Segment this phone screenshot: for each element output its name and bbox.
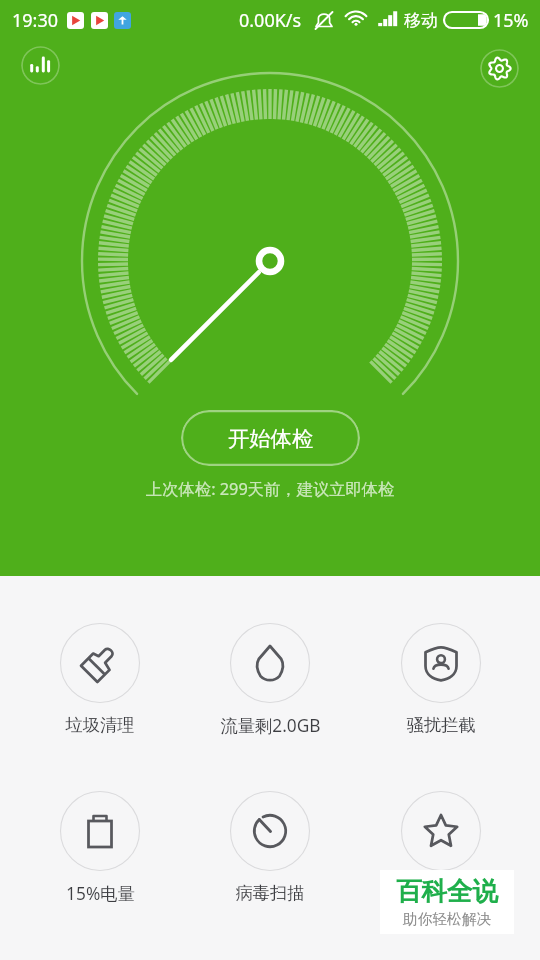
button[interactable]: Data remaining [195,623,345,738]
staticText: 19:30 [12,8,59,33]
staticText: 百科全说 [396,875,498,907]
button[interactable]: Battery [25,791,175,906]
button[interactable]: Block harassment [366,623,516,736]
button[interactable]: Favourites [366,791,516,904]
staticText: 病毒扫描 [235,882,305,904]
button[interactable]: Junk cleanup [25,623,175,736]
button[interactable]: Settings [480,49,519,88]
button[interactable]: Virus scan [195,791,345,904]
staticText: 助你轻松解决 [403,910,492,929]
staticText: 骚扰拦截 [406,714,476,736]
staticText: 流量剩2.0GB [220,714,321,738]
button[interactable]: Statistics [21,46,60,85]
button[interactable]: 开始体检 [181,410,360,466]
staticText: 15% [493,8,529,33]
staticText: 开始体检 [228,425,314,452]
staticText: 0.00K/s [239,8,302,33]
staticText: 上次体检: 299天前，建议立即体检 [146,478,395,500]
staticText: 15%电量 [66,882,135,906]
staticText: 垃圾清理 [65,714,135,736]
staticText: 移动 [404,10,438,31]
staticText: 收藏 [424,882,459,904]
